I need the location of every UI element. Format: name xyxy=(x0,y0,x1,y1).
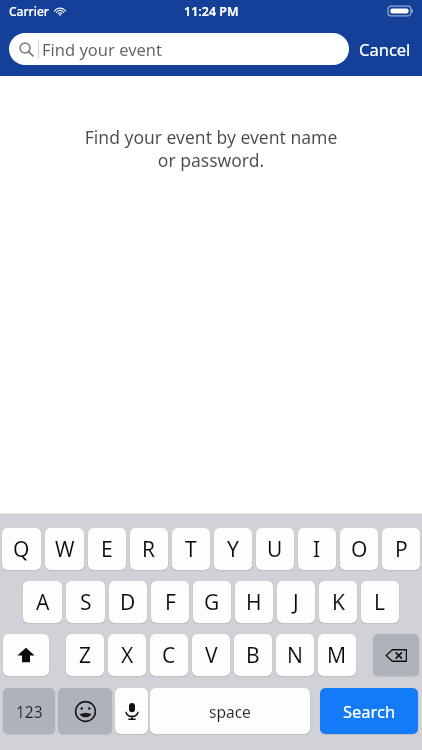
staticText: Search xyxy=(343,700,396,722)
staticText: Carrier xyxy=(9,3,49,19)
button[interactable]: G xyxy=(193,581,231,623)
staticText: I xyxy=(313,535,321,564)
button[interactable]: F xyxy=(151,581,189,623)
button[interactable]: S xyxy=(66,581,105,623)
staticText: Find your event xyxy=(42,38,162,60)
staticText: 11:24 PM xyxy=(184,3,239,20)
staticText: J xyxy=(293,588,299,617)
staticText: C xyxy=(162,641,176,670)
staticText: N xyxy=(287,641,303,670)
staticText: X xyxy=(121,641,134,670)
button[interactable]: C xyxy=(150,634,188,676)
button[interactable]: P xyxy=(382,528,420,570)
staticText: T xyxy=(185,535,197,564)
button[interactable]: A xyxy=(23,581,62,623)
button[interactable]: Z xyxy=(66,634,104,676)
button[interactable]: D xyxy=(109,581,147,623)
button[interactable]: B xyxy=(234,634,272,676)
staticText: P xyxy=(395,535,408,564)
button[interactable]: K xyxy=(319,581,357,623)
staticText: G xyxy=(204,588,220,617)
staticText: Y xyxy=(227,535,239,564)
staticText: Q xyxy=(13,535,30,564)
staticText: B xyxy=(246,641,260,670)
staticText: Cancel xyxy=(359,38,411,60)
button[interactable]: 123 xyxy=(3,688,55,734)
staticText: E xyxy=(101,535,113,564)
button[interactable]: T xyxy=(172,528,210,570)
button[interactable]: Backspace xyxy=(373,634,419,676)
button[interactable]: M xyxy=(318,634,356,676)
button[interactable]: N xyxy=(276,634,314,676)
staticText: Find your event by event name or passwor… xyxy=(0,125,422,172)
staticText: K xyxy=(332,588,345,617)
button[interactable]: O xyxy=(340,528,378,570)
staticText: O xyxy=(351,535,368,564)
staticText: U xyxy=(267,535,283,564)
button[interactable]: L xyxy=(361,581,399,623)
staticText: H xyxy=(246,588,262,617)
button[interactable]: W xyxy=(45,528,84,570)
button[interactable]: Shift xyxy=(3,634,49,676)
staticText: V xyxy=(205,641,218,670)
staticText: L xyxy=(374,588,386,617)
button[interactable]: R xyxy=(130,528,168,570)
staticText: Z xyxy=(79,641,92,670)
button[interactable]: Find your event xyxy=(9,33,349,65)
button[interactable]: Cancel xyxy=(349,32,413,66)
button[interactable]: E xyxy=(88,528,126,570)
staticText: W xyxy=(55,535,75,564)
button[interactable]: Emoji keyboard xyxy=(58,688,112,734)
staticText: space xyxy=(209,701,251,722)
staticText: F xyxy=(165,588,176,617)
button[interactable]: X xyxy=(108,634,146,676)
button[interactable]: J xyxy=(277,581,315,623)
staticText: D xyxy=(120,588,136,617)
button[interactable]: Dictate xyxy=(115,688,148,734)
staticText: A xyxy=(36,588,50,617)
button[interactable]: Q xyxy=(2,528,41,570)
button[interactable]: I xyxy=(298,528,336,570)
button[interactable]: space xyxy=(150,688,310,734)
staticText: S xyxy=(80,588,92,617)
staticText: M xyxy=(327,641,347,670)
button[interactable]: V xyxy=(192,634,230,676)
button[interactable]: U xyxy=(256,528,294,570)
button[interactable]: Y xyxy=(214,528,252,570)
staticText: 123 xyxy=(16,701,43,722)
button[interactable]: H xyxy=(235,581,273,623)
button[interactable]: Search xyxy=(320,688,418,734)
staticText: R xyxy=(142,535,156,564)
